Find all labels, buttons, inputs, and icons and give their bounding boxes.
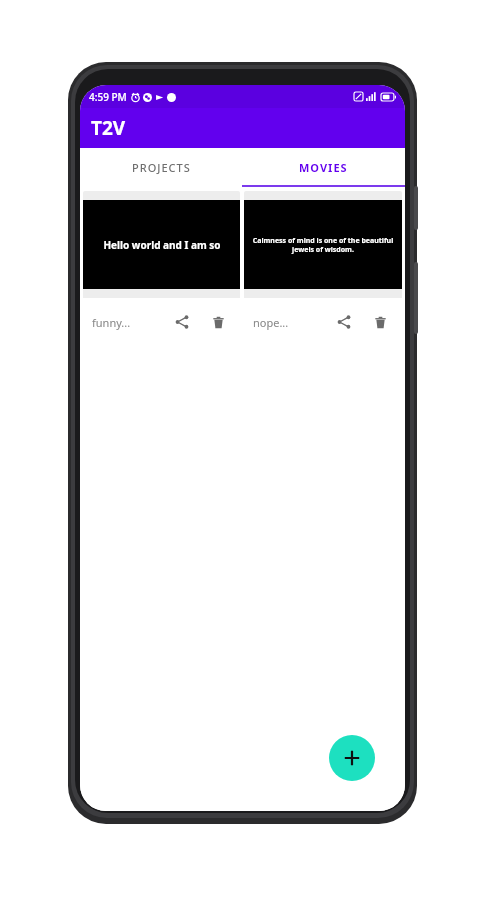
- staticText: MOVIES: [299, 160, 348, 175]
- button[interactable]: Delete: [369, 311, 391, 333]
- button[interactable]: Hello world and I am so: [83, 191, 240, 346]
- button[interactable]: PROJECTS: [80, 148, 242, 187]
- staticText: PROJECTS: [132, 160, 191, 175]
- button[interactable]: Share: [171, 311, 193, 333]
- button[interactable]: Calmness of mind is one of the beautiful…: [244, 191, 402, 346]
- staticText: nope...: [253, 315, 289, 330]
- button[interactable]: MOVIES: [242, 148, 405, 187]
- button[interactable]: Share: [333, 311, 355, 333]
- staticText: 4:59 PM: [89, 90, 127, 104]
- staticText: Hello world and I am so: [103, 238, 221, 252]
- staticText: T2V: [91, 115, 126, 141]
- button[interactable]: Delete: [207, 311, 229, 333]
- staticText: funny...: [92, 315, 131, 330]
- staticText: Calmness of mind is one of the beautiful…: [252, 236, 394, 254]
- button[interactable]: Add: [329, 735, 375, 781]
